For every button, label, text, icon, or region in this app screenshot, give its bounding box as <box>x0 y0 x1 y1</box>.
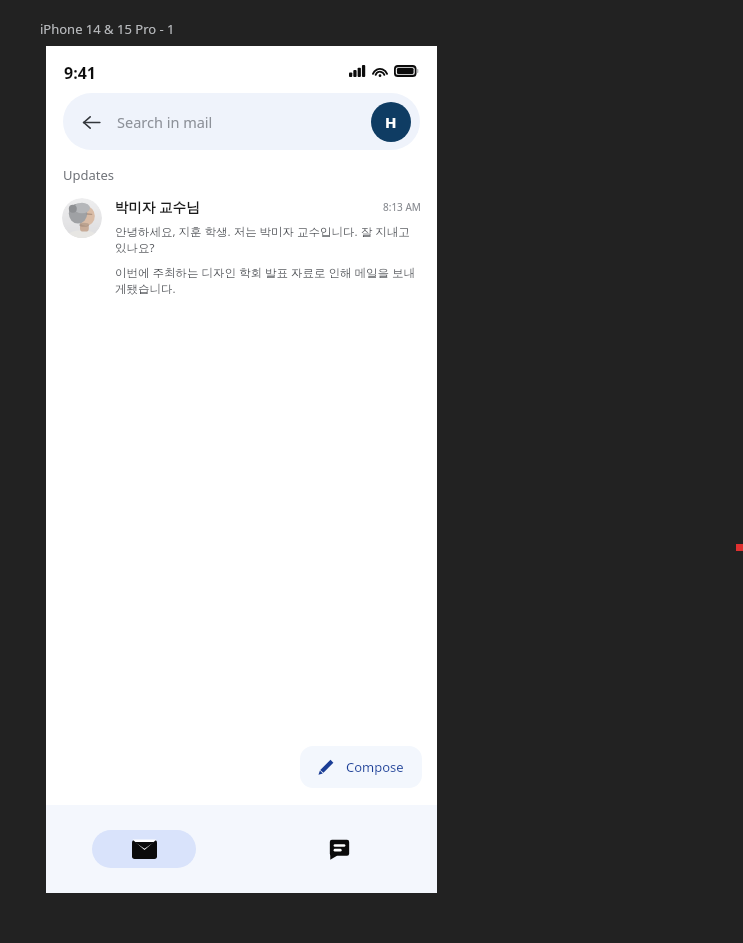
staticText: 안녕하세요, 지훈 학생. 저는 박미자 교수입니다. 잘 지내고 있나요? <box>115 224 421 256</box>
other: Sender avatar <box>62 198 102 238</box>
staticText: Search in mail <box>117 112 213 132</box>
staticText: Compose <box>346 758 404 776</box>
button[interactable]: Account <box>371 102 411 142</box>
button[interactable]: Back <box>73 104 109 140</box>
button[interactable]: Sender avatar <box>46 192 437 303</box>
staticText: 박미자 교수님 <box>115 198 200 216</box>
staticText: 이번에 주최하는 디자인 학회 발표 자료로 인해 메일을 보내게됐습니다. <box>115 265 421 297</box>
staticText: H <box>385 112 397 132</box>
button[interactable]: Compose <box>300 746 422 788</box>
staticText: iPhone 14 & 15 Pro - 1 <box>40 20 175 38</box>
staticText: 8:13 AM <box>383 200 421 214</box>
button[interactable]: Chat <box>287 830 391 868</box>
staticText: 9:41 <box>64 62 96 84</box>
staticText: Updates <box>63 166 115 184</box>
button[interactable]: Back <box>63 93 420 150</box>
button[interactable]: Mail <box>92 830 196 868</box>
